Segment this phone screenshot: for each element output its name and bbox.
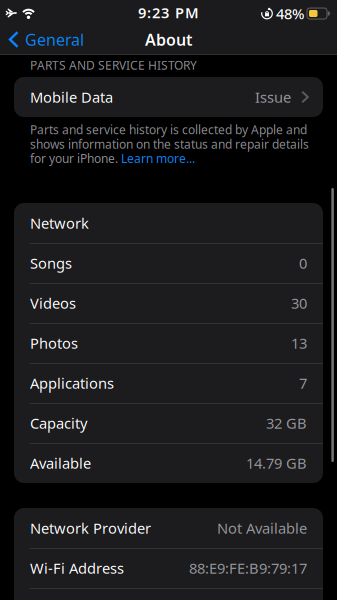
staticText: Not Available (217, 518, 307, 538)
staticText: Photos (30, 333, 78, 353)
staticText: Learn more... (121, 150, 195, 166)
staticText: Mobile Data (30, 87, 113, 107)
staticText: Network (30, 213, 89, 233)
staticText: Wi-Fi Address (30, 558, 124, 578)
staticText: About (145, 29, 192, 50)
staticText: for your iPhone. (30, 150, 121, 166)
staticText: Issue (255, 87, 291, 107)
staticText: 9:23 PM (138, 3, 199, 22)
staticText: 7 (299, 373, 307, 393)
staticText: General (25, 29, 84, 50)
button[interactable]: Back (0, 29, 84, 50)
staticText: 48% (276, 4, 304, 23)
staticText: Network Provider (30, 518, 151, 538)
staticText: 30 (291, 293, 307, 313)
button[interactable]: Mobile Data (14, 77, 323, 117)
staticText: 32 GB (266, 413, 307, 433)
staticText: 14.79 GB (246, 453, 307, 473)
staticText: Songs (30, 253, 72, 273)
staticText: Videos (30, 293, 76, 313)
staticText: Applications (30, 373, 114, 393)
staticText: shows information on the status and repa… (30, 136, 309, 152)
staticText: 0 (299, 253, 307, 273)
staticText: Capacity (30, 413, 87, 433)
staticText: Available (30, 453, 91, 473)
staticText: Parts and service history is collected b… (30, 122, 307, 137)
staticText: 13 (291, 333, 307, 353)
staticText: 88:E9:FE:B9:79:17 (189, 558, 307, 578)
button[interactable]: Learn more... (121, 150, 195, 166)
staticText: PARTS AND SERVICE HISTORY (30, 57, 197, 73)
